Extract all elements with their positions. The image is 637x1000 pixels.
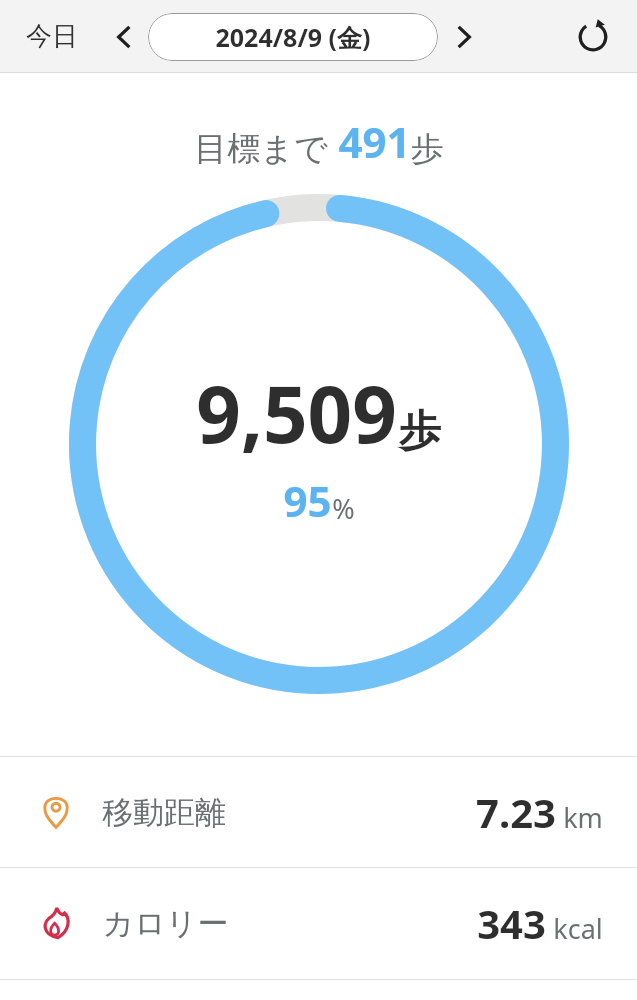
staticText: 歩 <box>399 405 441 458</box>
staticText: 7.23 <box>476 785 556 839</box>
button[interactable]: カロリー <box>0 868 637 978</box>
staticText: % <box>332 490 355 527</box>
staticText: 343 <box>477 896 546 950</box>
button[interactable]: 今日 <box>0 12 88 61</box>
staticText: 移動距離 <box>102 793 226 832</box>
button[interactable]: Refresh <box>567 11 619 63</box>
staticText: カロリー <box>102 904 229 943</box>
button[interactable]: 2024/8/9 (金) <box>148 13 438 61</box>
staticText: km <box>563 799 603 836</box>
staticText: kcal <box>553 910 603 947</box>
button[interactable]: Next day <box>442 15 486 59</box>
staticText: 9,509 <box>196 360 397 466</box>
button[interactable]: Previous day <box>102 15 146 59</box>
staticText: 今日 <box>26 20 78 53</box>
staticText: 491 <box>338 113 411 170</box>
staticText: 歩 <box>411 128 444 170</box>
staticText: 目標まで <box>194 128 328 170</box>
staticText: 2024/8/9 (金) <box>215 20 371 54</box>
button[interactable]: 移動距離 <box>0 757 637 867</box>
staticText: 95 <box>283 472 332 529</box>
